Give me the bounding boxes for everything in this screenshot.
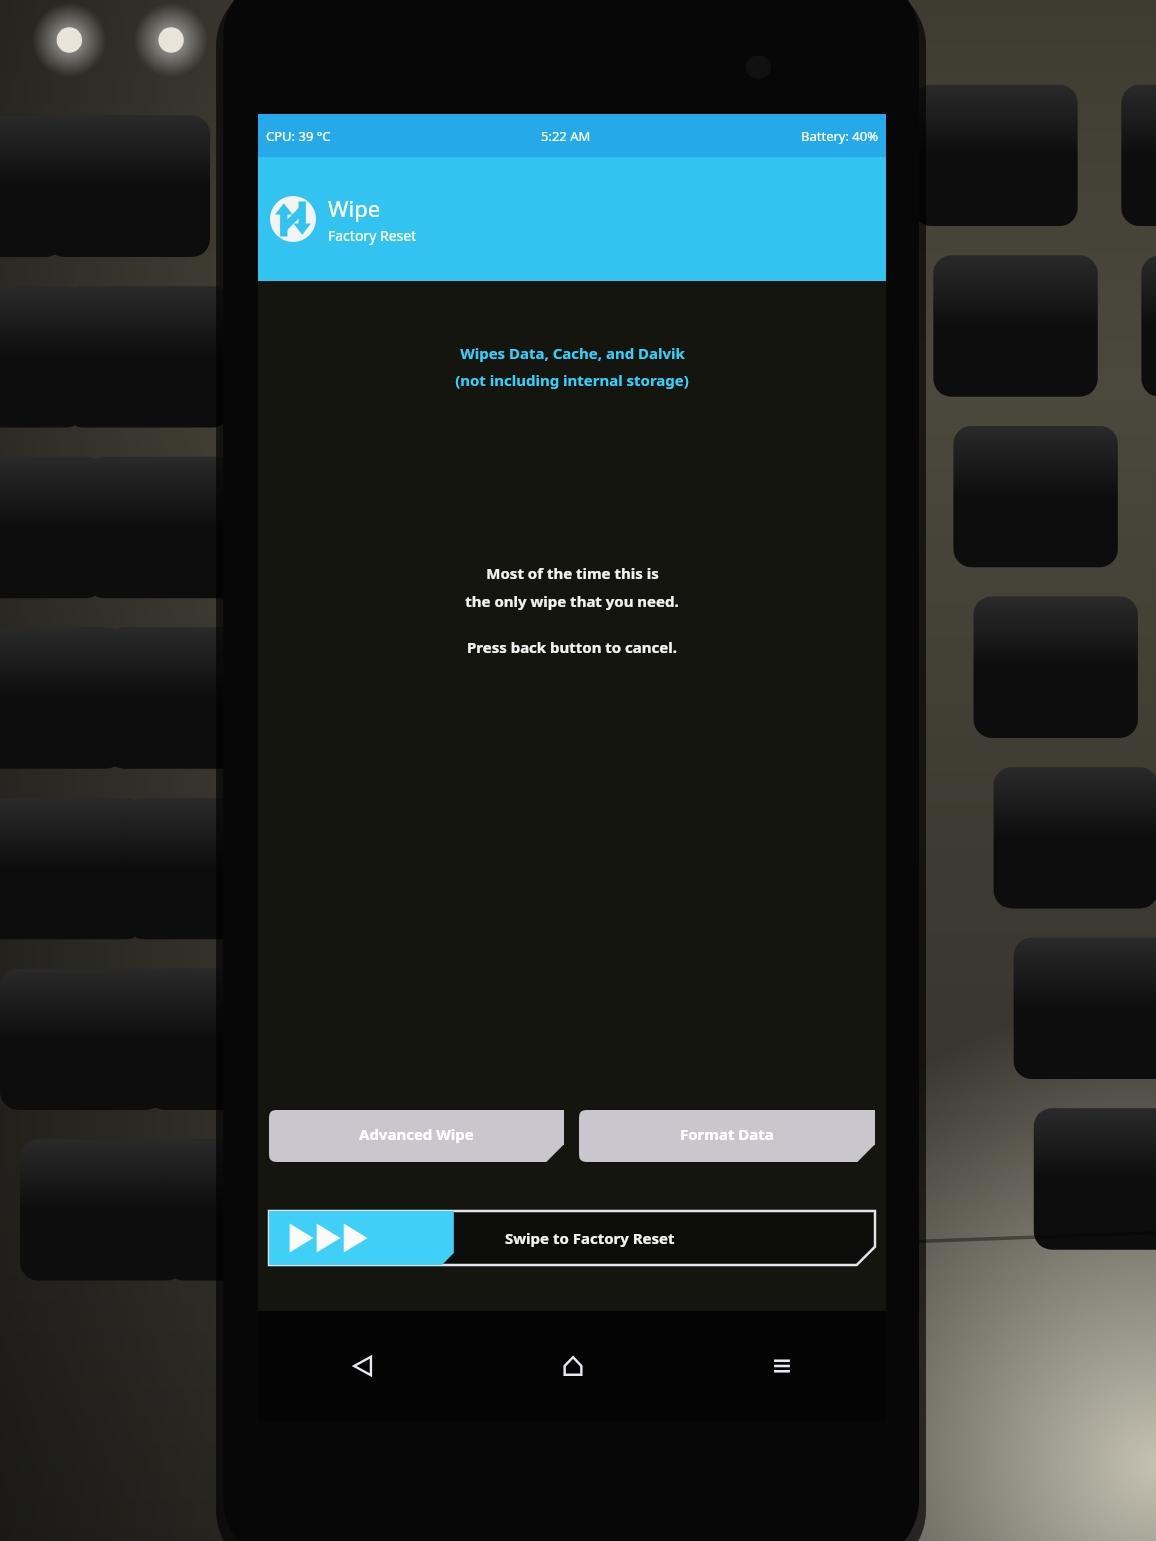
button[interactable]: Home xyxy=(468,1311,677,1421)
staticText: Factory Reset xyxy=(328,226,417,245)
button[interactable]: Advanced Wipe xyxy=(269,1110,564,1162)
staticText: Swipe to Factory Reset xyxy=(505,1228,675,1248)
staticText: Press back button to cancel. xyxy=(467,637,677,657)
button[interactable]: Swipe to Factory Reset xyxy=(269,1211,875,1265)
staticText: the only wipe that you need. xyxy=(465,591,679,611)
staticText: Wipe xyxy=(328,193,381,223)
button[interactable]: Wipe xyxy=(258,157,886,281)
staticText: Format Data xyxy=(680,1124,774,1144)
staticText: Wipes Data, Cache, and Dalvik xyxy=(460,343,685,363)
button[interactable]: Recent apps xyxy=(677,1311,886,1421)
staticText: Most of the time this is xyxy=(486,563,659,583)
staticText: Advanced Wipe xyxy=(359,1124,474,1144)
button[interactable]: Back xyxy=(258,1311,468,1421)
staticText: (not including internal storage) xyxy=(455,370,689,390)
staticText: 5:22 AM xyxy=(541,127,591,145)
staticText: CPU: 39 °C xyxy=(266,127,331,145)
staticText: Battery: 40% xyxy=(801,127,878,145)
button[interactable]: Format Data xyxy=(579,1110,875,1162)
